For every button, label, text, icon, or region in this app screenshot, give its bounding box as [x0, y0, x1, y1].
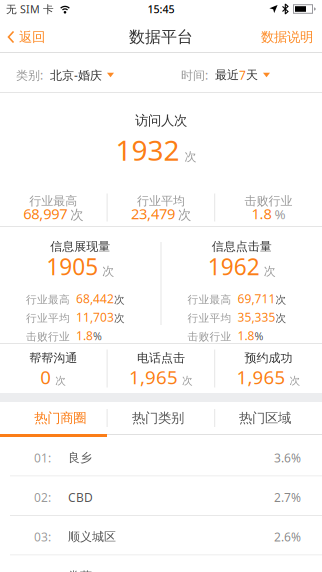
staticText: 23,479 [131, 204, 175, 223]
staticText: 3.6% [274, 450, 301, 466]
staticText: 预约成功 [245, 351, 293, 365]
staticText: 1.8 [252, 204, 272, 223]
staticText: 类别: [16, 67, 43, 83]
staticText: 行业平均 [187, 312, 231, 325]
staticText: 次 [114, 312, 125, 325]
staticText: 热门商圈 [34, 410, 86, 426]
button[interactable]: 类别: [0, 67, 114, 83]
staticText: 无 SIM 卡 [6, 2, 54, 16]
staticText: 热门区域 [239, 410, 291, 426]
button[interactable]: 02: [0, 476, 322, 516]
staticText: 02: [34, 489, 51, 505]
staticText: CBD [68, 489, 93, 505]
button[interactable]: 热门区域 [215, 402, 322, 434]
staticText: 次 [114, 293, 125, 306]
button[interactable]: 返回 [0, 29, 45, 45]
staticText: 1905 [46, 251, 98, 281]
staticText: 行业最高 [26, 293, 70, 306]
staticText: 次 [55, 374, 66, 387]
staticText: 信息展现量 [50, 239, 110, 254]
staticText: 1,965 [237, 365, 286, 389]
staticText: 行业平均 [137, 194, 185, 208]
staticText: 69,711 [237, 290, 275, 306]
staticText: 击败行业 [26, 330, 70, 343]
staticText: 68,997 [23, 204, 67, 223]
staticText: 热门类别 [132, 410, 184, 426]
staticText: 03: [34, 529, 51, 545]
button[interactable]: 04: [0, 555, 322, 572]
staticText: % [93, 329, 102, 343]
staticText: 次 [275, 293, 286, 306]
staticText: 访问人次 [135, 112, 187, 129]
staticText: 次 [184, 149, 196, 164]
staticText: 击败行业 [245, 194, 293, 208]
staticText: 次 [178, 207, 191, 223]
staticText: 1,965 [129, 365, 178, 389]
staticText: 次 [102, 264, 114, 279]
staticText: 01: [34, 450, 51, 466]
staticText: 68,442 [76, 290, 114, 306]
staticText: 次 [264, 264, 276, 279]
staticText: 35,335 [237, 309, 275, 325]
staticText: 信息点击量 [212, 239, 272, 254]
staticText: 1962 [208, 251, 260, 281]
staticText: 良乡 [68, 450, 92, 465]
staticText: 1.8 [237, 327, 254, 343]
staticText: 击败行业 [187, 330, 231, 343]
staticText: 帮帮沟通 [29, 351, 77, 365]
staticText: 北京-婚庆 [50, 67, 102, 83]
staticText: 行业最高 [187, 293, 231, 306]
staticText: 2.7% [274, 489, 301, 505]
staticText: 1.8 [76, 327, 93, 343]
staticText: 常营 [68, 569, 92, 572]
staticText: 顺义城区 [68, 529, 116, 544]
staticText: 11,703 [76, 309, 114, 325]
button[interactable]: 时间: [181, 67, 270, 83]
staticText: 次 [70, 207, 83, 223]
staticText: % [275, 205, 286, 223]
staticText: 数据平台 [129, 27, 193, 47]
staticText: 次 [182, 374, 193, 387]
button[interactable]: 01: [0, 437, 322, 476]
staticText: 15:45 [147, 2, 174, 16]
staticText: 1932 [115, 131, 179, 169]
staticText: 次 [290, 374, 301, 387]
staticText: 行业平均 [26, 312, 70, 325]
staticText: 返回 [19, 29, 45, 45]
staticText: 电话点击 [137, 351, 185, 365]
staticText: 次 [275, 312, 286, 325]
button[interactable]: 热门类别 [108, 402, 214, 434]
staticText: 2.6% [274, 529, 301, 545]
staticText: 最近 [215, 68, 239, 82]
button[interactable]: 数据说明 [261, 29, 322, 45]
staticText: 行业最高 [29, 194, 77, 208]
staticText: % [254, 329, 263, 343]
staticText: 时间: [181, 67, 208, 83]
staticText: 7 [239, 67, 246, 83]
staticText: 天 [246, 68, 258, 82]
button[interactable]: 热门商圈 [0, 402, 107, 434]
staticText: 0 [40, 365, 51, 389]
staticText: 数据说明 [261, 29, 313, 45]
button[interactable]: 03: [0, 516, 322, 555]
